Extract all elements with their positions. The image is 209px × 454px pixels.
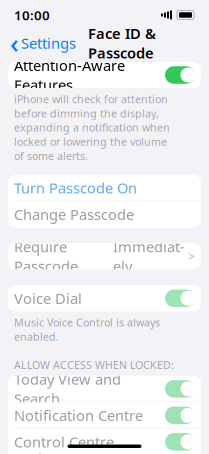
staticText: Control Centre [14,432,114,452]
staticText: ALLOW ACCESS WHEN LOCKED: [14,358,174,372]
staticText: Voice Dial [14,289,82,308]
staticText: Change Passcode [14,205,134,224]
button[interactable]: Control Centre [8,429,201,454]
button[interactable]: Turn Passcode On [8,175,201,201]
staticText: Notification Centre [14,406,143,425]
staticText: Immediately [113,237,185,276]
staticText: Require Passcode [14,237,78,276]
button[interactable]: Today View and Search [8,376,201,402]
staticText: Today View and Search [14,369,121,408]
staticText: Settings [21,33,76,53]
button[interactable]: Voice Dial [8,285,201,311]
button[interactable]: Require Passcode [8,243,201,269]
staticText: Attention-Aware Features [14,55,125,94]
button[interactable]: Attention-Aware Features [8,62,201,88]
button[interactable]: Notification Centre [8,402,201,428]
button[interactable]: Change Passcode [8,201,201,227]
button[interactable]: ‹ [4,30,82,56]
staticText: Lock Screen Widgets [14,449,96,454]
staticText: > [188,248,195,264]
staticText: iPhone will check for attention before d… [14,92,170,163]
staticText: Music Voice Control is always enabled. [14,315,160,344]
staticText: Face ID & Passcode [88,23,156,62]
staticText: 10:00 [14,6,50,24]
staticText: ‹ [10,25,19,61]
staticText: Turn Passcode On [14,178,137,198]
